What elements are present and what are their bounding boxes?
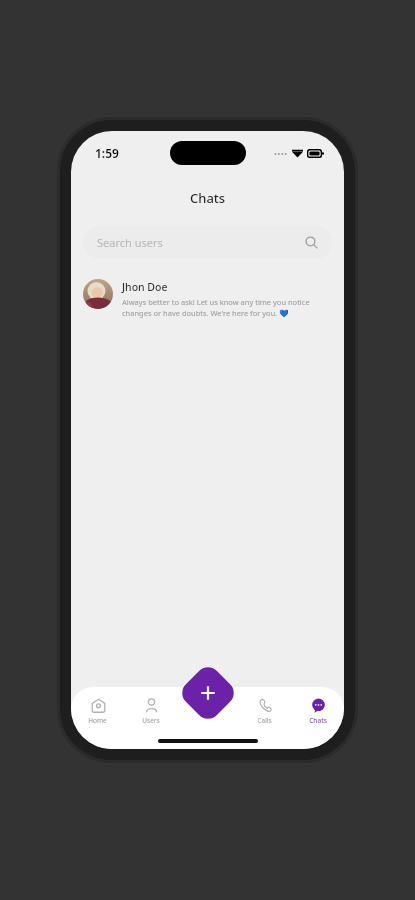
staticText: Jhon Doe xyxy=(122,280,168,294)
staticText: Chats xyxy=(190,189,226,207)
staticText: Home xyxy=(88,716,107,725)
button[interactable]: Search users xyxy=(83,226,332,259)
staticText: Calls xyxy=(257,716,272,725)
button[interactable]: New chat xyxy=(177,662,239,724)
staticText: Search users xyxy=(97,235,305,250)
button[interactable]: Calls xyxy=(238,695,291,727)
button[interactable]: Home xyxy=(71,695,124,727)
staticText: Always better to ask! Let us know any ti… xyxy=(122,297,332,318)
staticText: 1:59 xyxy=(95,145,119,161)
button[interactable]: Chats xyxy=(291,695,344,727)
button[interactable]: Users xyxy=(124,695,177,727)
button[interactable]: Jhon Doe xyxy=(71,275,344,322)
staticText: Chats xyxy=(309,716,327,725)
staticText: Users xyxy=(142,716,160,725)
